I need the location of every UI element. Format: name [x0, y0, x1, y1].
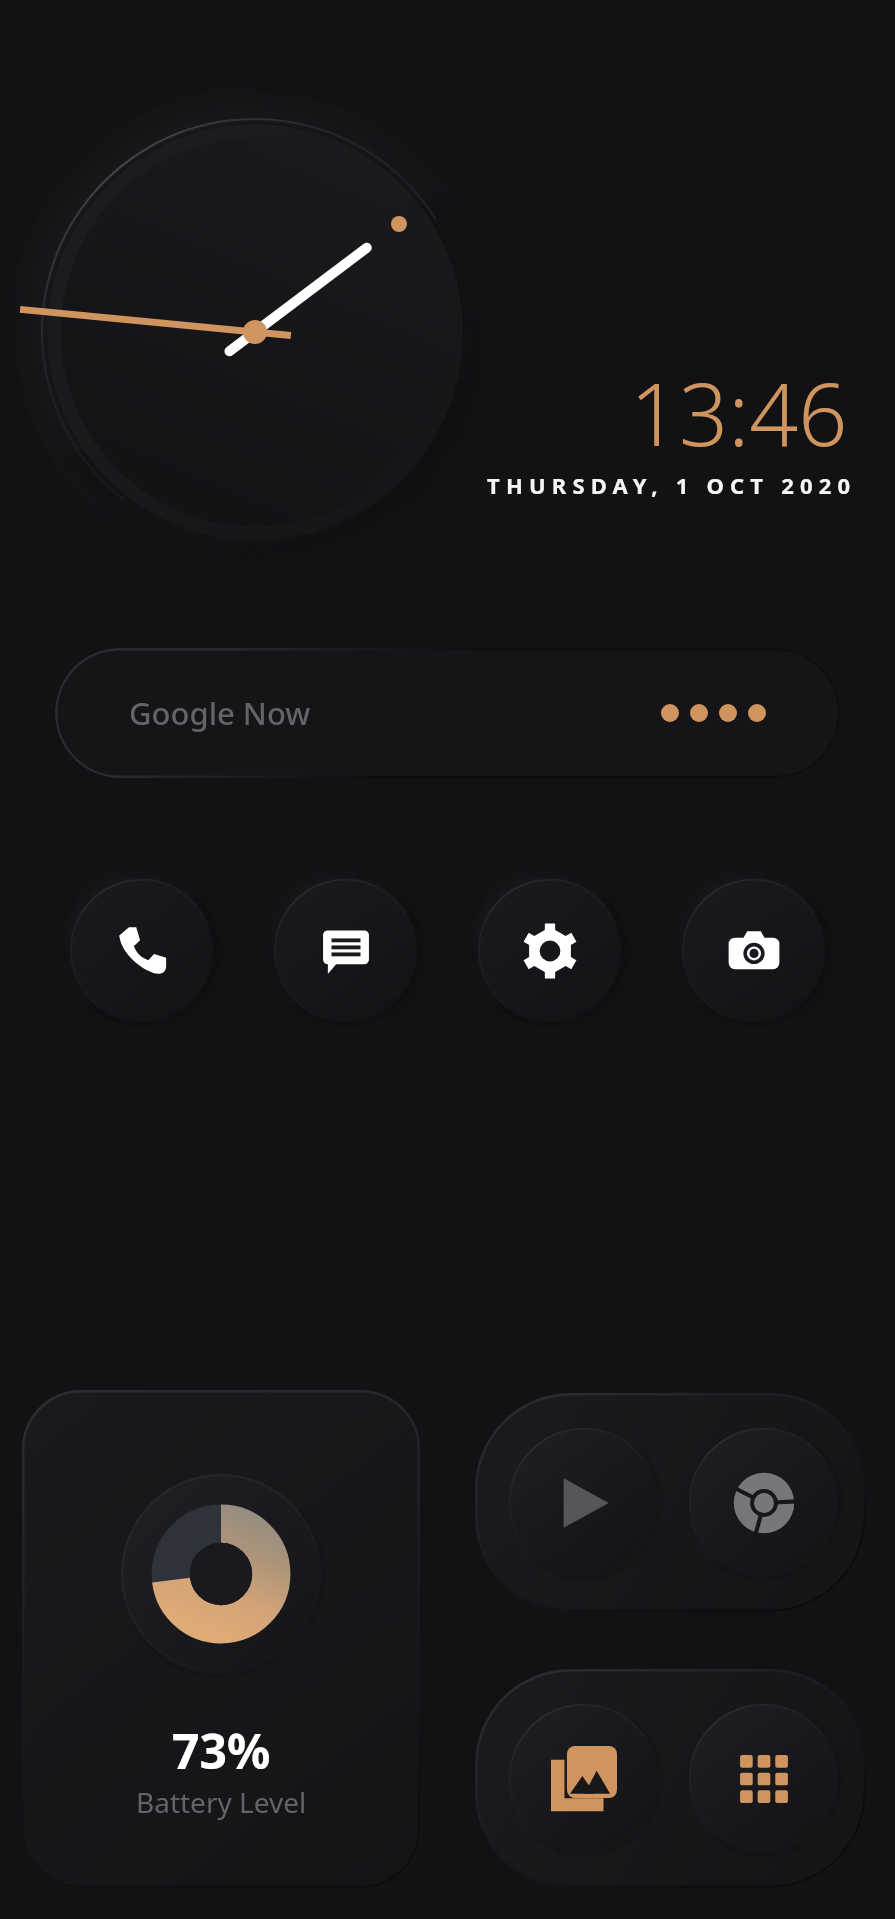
button[interactable]: Chrome: [689, 1428, 838, 1577]
staticText: 13:46: [630, 354, 848, 471]
button[interactable]: Google Now: [55, 648, 840, 778]
staticText: THURSDAY, 1 OCT 2020: [487, 470, 857, 500]
button[interactable]: Camera: [682, 879, 825, 1022]
other: Analog clock: [0, 0, 895, 1919]
button[interactable]: Play: [509, 1428, 658, 1577]
button[interactable]: Phone: [70, 879, 213, 1022]
button[interactable]: Settings: [478, 879, 621, 1022]
staticText: Google Now: [129, 692, 311, 734]
staticText: Battery Level: [136, 1783, 307, 1821]
button[interactable]: Photos: [509, 1704, 658, 1853]
button[interactable]: Battery level 73 percent: [22, 1390, 420, 1888]
button[interactable]: Messages: [274, 879, 417, 1022]
button[interactable]: All apps: [689, 1704, 838, 1853]
staticText: 73%: [172, 1718, 271, 1783]
